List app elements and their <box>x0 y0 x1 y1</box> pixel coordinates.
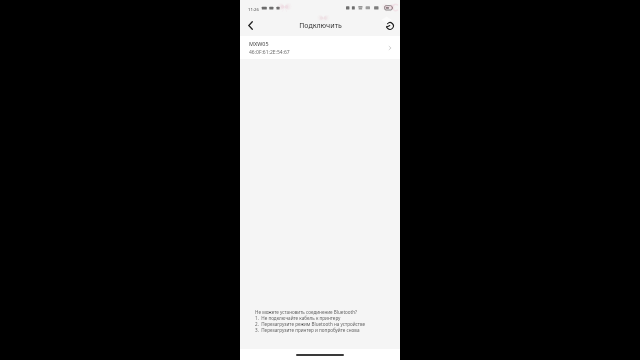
staticText: 3. Перезагрузите принтер и попробуйте сн… <box>255 327 360 333</box>
staticText: 11:26 <box>248 6 259 12</box>
button[interactable]: MXW05 <box>240 36 400 59</box>
staticText: 46:0F:61:2E:54:67 <box>249 49 290 56</box>
staticText: 1. Не подключайте кабель к принтеру <box>255 315 341 321</box>
staticText: 2. Перезагрузите режим Bluetooth на устр… <box>255 321 366 327</box>
button[interactable]: Refresh <box>383 19 397 33</box>
button[interactable]: Back <box>243 18 257 32</box>
staticText: Подключить <box>299 21 342 30</box>
staticText: Не можете установить соединение Bluetoot… <box>255 309 358 315</box>
staticText: MXW05 <box>249 40 269 47</box>
